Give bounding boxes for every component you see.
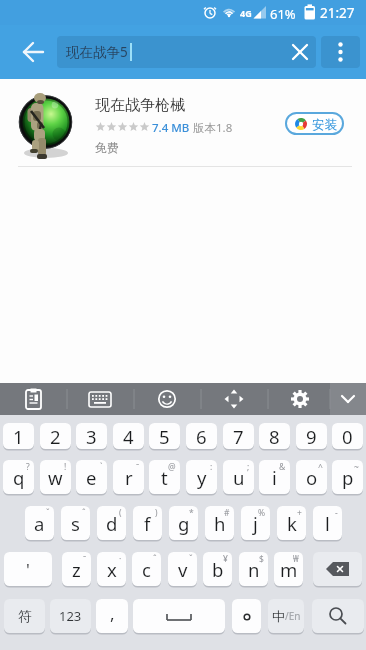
button[interactable]: 0: [332, 423, 363, 449]
staticText: ˉ: [83, 553, 87, 565]
button[interactable]: g: [169, 506, 198, 540]
button[interactable]: [321, 36, 360, 68]
button[interactable]: [0, 25, 56, 79]
staticText: l: [325, 511, 330, 536]
button[interactable]: 3: [76, 423, 107, 449]
staticText: ˆ: [153, 553, 157, 565]
staticText: 5: [159, 424, 170, 449]
button[interactable]: [14, 88, 80, 164]
button[interactable]: [57, 36, 316, 68]
button[interactable]: [330, 383, 366, 415]
button[interactable]: s: [61, 506, 90, 540]
staticText: `: [100, 461, 103, 473]
staticText: 现在战争5: [66, 43, 128, 61]
staticText: s: [71, 511, 80, 536]
button[interactable]: k: [277, 506, 306, 540]
staticText: ˆ: [82, 507, 86, 519]
staticText: ': [26, 558, 30, 581]
button[interactable]: 2: [40, 423, 71, 449]
staticText: g: [178, 511, 190, 536]
button[interactable]: w: [40, 460, 71, 494]
button[interactable]: f: [133, 506, 162, 540]
button[interactable]: y: [186, 460, 217, 494]
button[interactable]: u: [223, 460, 254, 494]
staticText: 7.4 MB: [152, 120, 190, 136]
button[interactable]: [286, 38, 314, 66]
staticText: j: [253, 511, 258, 536]
button[interactable]: [134, 383, 201, 415]
button[interactable]: 5: [149, 423, 180, 449]
staticText: t: [161, 465, 168, 490]
button[interactable]: o: [296, 460, 327, 494]
staticText: ): [155, 507, 158, 519]
staticText: v: [178, 557, 188, 582]
button[interactable]: 6: [186, 423, 217, 449]
button[interactable]: 9: [296, 423, 327, 449]
staticText: 符: [18, 608, 32, 625]
button[interactable]: z: [62, 552, 91, 586]
staticText: 3: [86, 424, 97, 449]
button[interactable]: v: [168, 552, 197, 586]
button[interactable]: 安装: [285, 112, 344, 135]
button[interactable]: [0, 383, 67, 415]
staticText: 4: [123, 424, 134, 449]
button[interactable]: [268, 383, 335, 415]
staticText: (: [119, 507, 122, 519]
staticText: 61%: [270, 5, 296, 23]
button[interactable]: i: [259, 460, 290, 494]
staticText: o: [306, 465, 318, 490]
button[interactable]: t: [149, 460, 180, 494]
button[interactable]: 中: [268, 599, 304, 633]
staticText: *: [189, 507, 194, 519]
staticText: z: [72, 557, 81, 582]
staticText: /En: [285, 609, 301, 623]
button[interactable]: a: [25, 506, 54, 540]
button[interactable]: d: [97, 506, 126, 540]
button[interactable]: 4: [113, 423, 144, 449]
button[interactable]: j: [241, 506, 270, 540]
staticText: -: [335, 507, 338, 519]
staticText: 1: [13, 424, 24, 449]
staticText: ¥: [223, 553, 228, 565]
staticText: 9: [306, 424, 317, 449]
staticText: %: [258, 507, 266, 519]
button[interactable]: 7: [223, 423, 254, 449]
button[interactable]: ,: [96, 599, 128, 633]
button[interactable]: p: [332, 460, 363, 494]
button[interactable]: 123: [50, 599, 91, 633]
button[interactable]: l: [313, 506, 342, 540]
button[interactable]: c: [132, 552, 161, 586]
button[interactable]: 符: [4, 599, 45, 633]
staticText: 2: [50, 424, 61, 449]
staticText: 0: [342, 424, 353, 449]
staticText: d: [106, 511, 118, 536]
button[interactable]: [67, 383, 134, 415]
staticText: k: [287, 511, 297, 536]
staticText: ·: [119, 553, 122, 565]
button[interactable]: e: [76, 460, 107, 494]
staticText: 6: [196, 424, 207, 449]
staticText: ,: [110, 602, 115, 625]
button[interactable]: [133, 599, 225, 633]
button[interactable]: h: [205, 506, 234, 540]
button[interactable]: q: [3, 460, 34, 494]
button[interactable]: n: [239, 552, 268, 586]
button[interactable]: x: [97, 552, 126, 586]
button[interactable]: b: [203, 552, 232, 586]
button[interactable]: m: [274, 552, 303, 586]
button[interactable]: 8: [259, 423, 290, 449]
staticText: x: [107, 557, 117, 582]
button[interactable]: [312, 599, 364, 633]
button[interactable]: [201, 383, 268, 415]
button[interactable]: [313, 552, 362, 586]
staticText: r: [125, 465, 133, 490]
staticText: p: [342, 465, 354, 490]
staticText: w: [48, 465, 63, 490]
staticText: 中: [272, 608, 285, 624]
button[interactable]: [232, 599, 261, 633]
staticText: @: [168, 461, 176, 473]
button[interactable]: 1: [3, 423, 34, 449]
button[interactable]: r: [113, 460, 144, 494]
button[interactable]: ': [4, 552, 52, 586]
staticText: 版本1.8: [193, 120, 233, 136]
